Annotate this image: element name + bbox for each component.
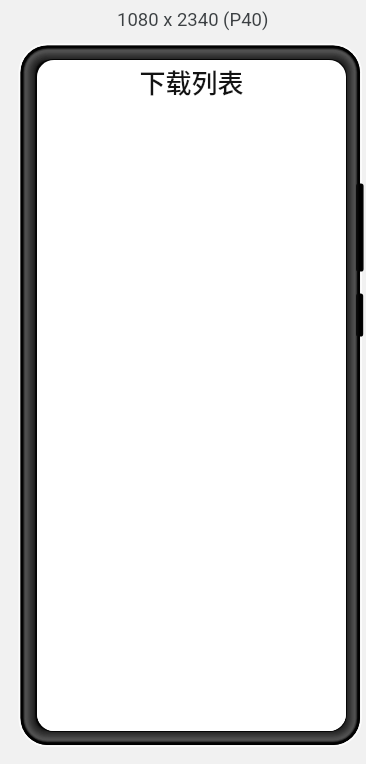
staticText: 1080 x 2340 (P40) [117,9,269,31]
button[interactable]: 下载列表 [37,60,346,98]
button[interactable]: Volume [356,183,364,271]
button[interactable]: Power [356,293,364,336]
staticText: 下载列表 [37,63,346,101]
